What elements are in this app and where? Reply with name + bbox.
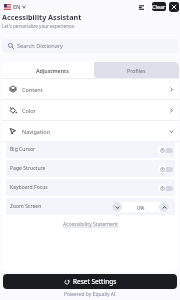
button[interactable]: Close — [169, 2, 179, 12]
staticText: Color — [22, 107, 36, 114]
staticText: Content — [22, 86, 43, 93]
button[interactable]: Accessibility Statement — [62, 220, 119, 229]
button[interactable]: Profiles — [94, 62, 179, 79]
staticText: 0% — [137, 204, 145, 211]
staticText: Search Dictionary — [17, 42, 63, 50]
button[interactable]: Search Dictionary — [2, 39, 178, 53]
button[interactable]: Adjustments — [2, 62, 94, 79]
staticText: Let's personalize your experience. — [2, 23, 76, 29]
staticText: Powered by Equally AI — [64, 291, 116, 298]
button[interactable]: Zoom Screen — [6, 198, 175, 215]
button[interactable]: Navigation — [2, 121, 179, 141]
button[interactable]: Keyboard Focus — [6, 179, 175, 196]
staticText: Page Structure — [10, 165, 46, 172]
button[interactable]: Dock panel — [137, 2, 146, 12]
staticText: Profiles — [127, 67, 146, 74]
staticText: Keyboard Focus — [10, 184, 48, 191]
staticText: Accessibility Assistant — [2, 12, 82, 22]
staticText: EN — [13, 3, 21, 11]
button[interactable]: Clear — [152, 2, 166, 11]
button[interactable]: Page Structure — [6, 160, 175, 177]
staticText: Navigation — [22, 128, 51, 135]
button[interactable]: EN — [3, 2, 27, 12]
button[interactable]: Increase zoom — [159, 202, 169, 212]
staticText: Clear — [152, 3, 166, 10]
button[interactable]: Content — [2, 79, 179, 99]
staticText: Big Cursor — [10, 146, 36, 153]
staticText: Reset Settings — [73, 277, 117, 286]
button[interactable]: Decrease zoom — [112, 202, 122, 212]
button[interactable]: Reset Settings — [3, 274, 177, 289]
staticText: Zoom Screen — [10, 203, 42, 210]
staticText: Adjustments — [36, 67, 69, 74]
button[interactable]: Color — [2, 100, 179, 120]
button[interactable]: Big Cursor — [6, 141, 175, 158]
